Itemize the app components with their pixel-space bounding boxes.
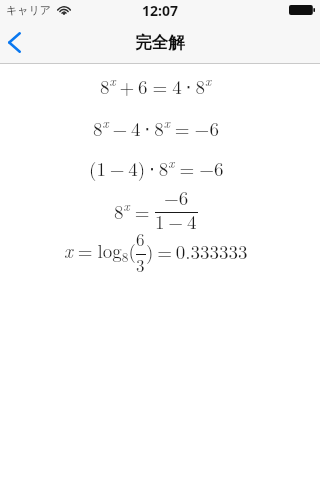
staticText: 12:07 — [142, 1, 178, 20]
staticText: 8x + 6 = 4 ⋅ 8x — [100, 71, 212, 99]
staticText: x = log8( — [64, 237, 136, 266]
staticText: 8x = — [114, 196, 155, 224]
staticText: (1 − 4) ⋅ 8x = −6 — [89, 153, 224, 181]
staticText: ) = 0.333333 — [146, 238, 248, 265]
staticText: キャリア — [6, 3, 52, 17]
staticText: 完全解 — [135, 32, 185, 53]
staticText: 6 — [136, 227, 145, 251]
staticText: 3 — [136, 253, 145, 277]
staticText: 1 − 4 — [155, 208, 197, 235]
staticText: 8x − 4 ⋅ 8x = −6 — [93, 113, 219, 141]
staticText: −6 — [164, 184, 189, 211]
button[interactable]: Back — [0, 20, 34, 64]
